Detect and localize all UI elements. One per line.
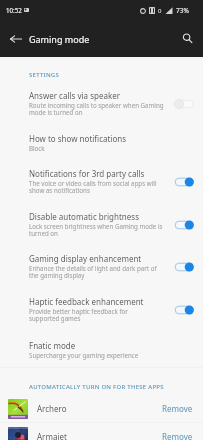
staticText: 10:52 — [6, 6, 22, 14]
staticText: Haptic feedback enhancement — [29, 296, 144, 307]
button[interactable]: Answer calls via speaker — [0, 90, 203, 117]
staticText: Gaming display enhancement — [29, 253, 142, 264]
staticText: Notifications for 3rd party calls — [29, 168, 145, 179]
staticText: SETTINGS — [29, 71, 59, 79]
button[interactable]: Disable automatic brightness — [0, 211, 203, 238]
button[interactable]: Back — [2, 25, 30, 53]
staticText: How to show notifications — [29, 133, 127, 144]
staticText: AUTOMATICALLY TURN ON FOR THESE APPS — [29, 383, 164, 391]
staticText: Disable automatic brightness — [29, 211, 139, 222]
button[interactable]: Search — [174, 25, 202, 53]
button[interactable]: Toggle on — [175, 302, 201, 318]
staticText: Provide better haptic feedback for suppo… — [29, 307, 128, 323]
button[interactable]: How to show notifications — [0, 133, 203, 152]
button[interactable]: Haptic feedback enhancement — [0, 296, 203, 323]
button[interactable]: Toggle off — [175, 96, 201, 112]
staticText: Gaming mode — [29, 33, 90, 45]
staticText: Armajet — [37, 431, 162, 440]
button[interactable]: Toggle on — [175, 217, 201, 233]
staticText: 73% — [176, 6, 189, 15]
staticText: Route incoming calls to speaker when Gam… — [29, 101, 164, 117]
staticText: Remove — [162, 403, 193, 414]
staticText: Block — [29, 144, 45, 152]
button[interactable]: Fnatic mode — [0, 340, 203, 359]
staticText: Archero — [37, 403, 162, 414]
staticText: Fnatic mode — [29, 340, 76, 351]
staticText: 0 — [158, 7, 162, 15]
staticText: The voice or video calls from social app… — [29, 179, 157, 195]
button[interactable]: Archero — [0, 395, 203, 422]
button[interactable]: Toggle on — [175, 259, 201, 275]
staticText: Remove — [162, 431, 193, 440]
button[interactable]: Gaming display enhancement — [0, 253, 203, 280]
button[interactable]: Notifications for 3rd party calls — [0, 168, 203, 195]
staticText: Answer calls via speaker — [29, 90, 120, 101]
staticText: Lock screen brightness when Gaming mode … — [29, 222, 163, 238]
staticText: Supercharge your gaming experience — [29, 351, 139, 359]
button[interactable]: Toggle on — [175, 174, 201, 190]
staticText: Enhance the details of light and dark pa… — [29, 264, 157, 280]
button[interactable]: Armajet — [0, 423, 203, 440]
